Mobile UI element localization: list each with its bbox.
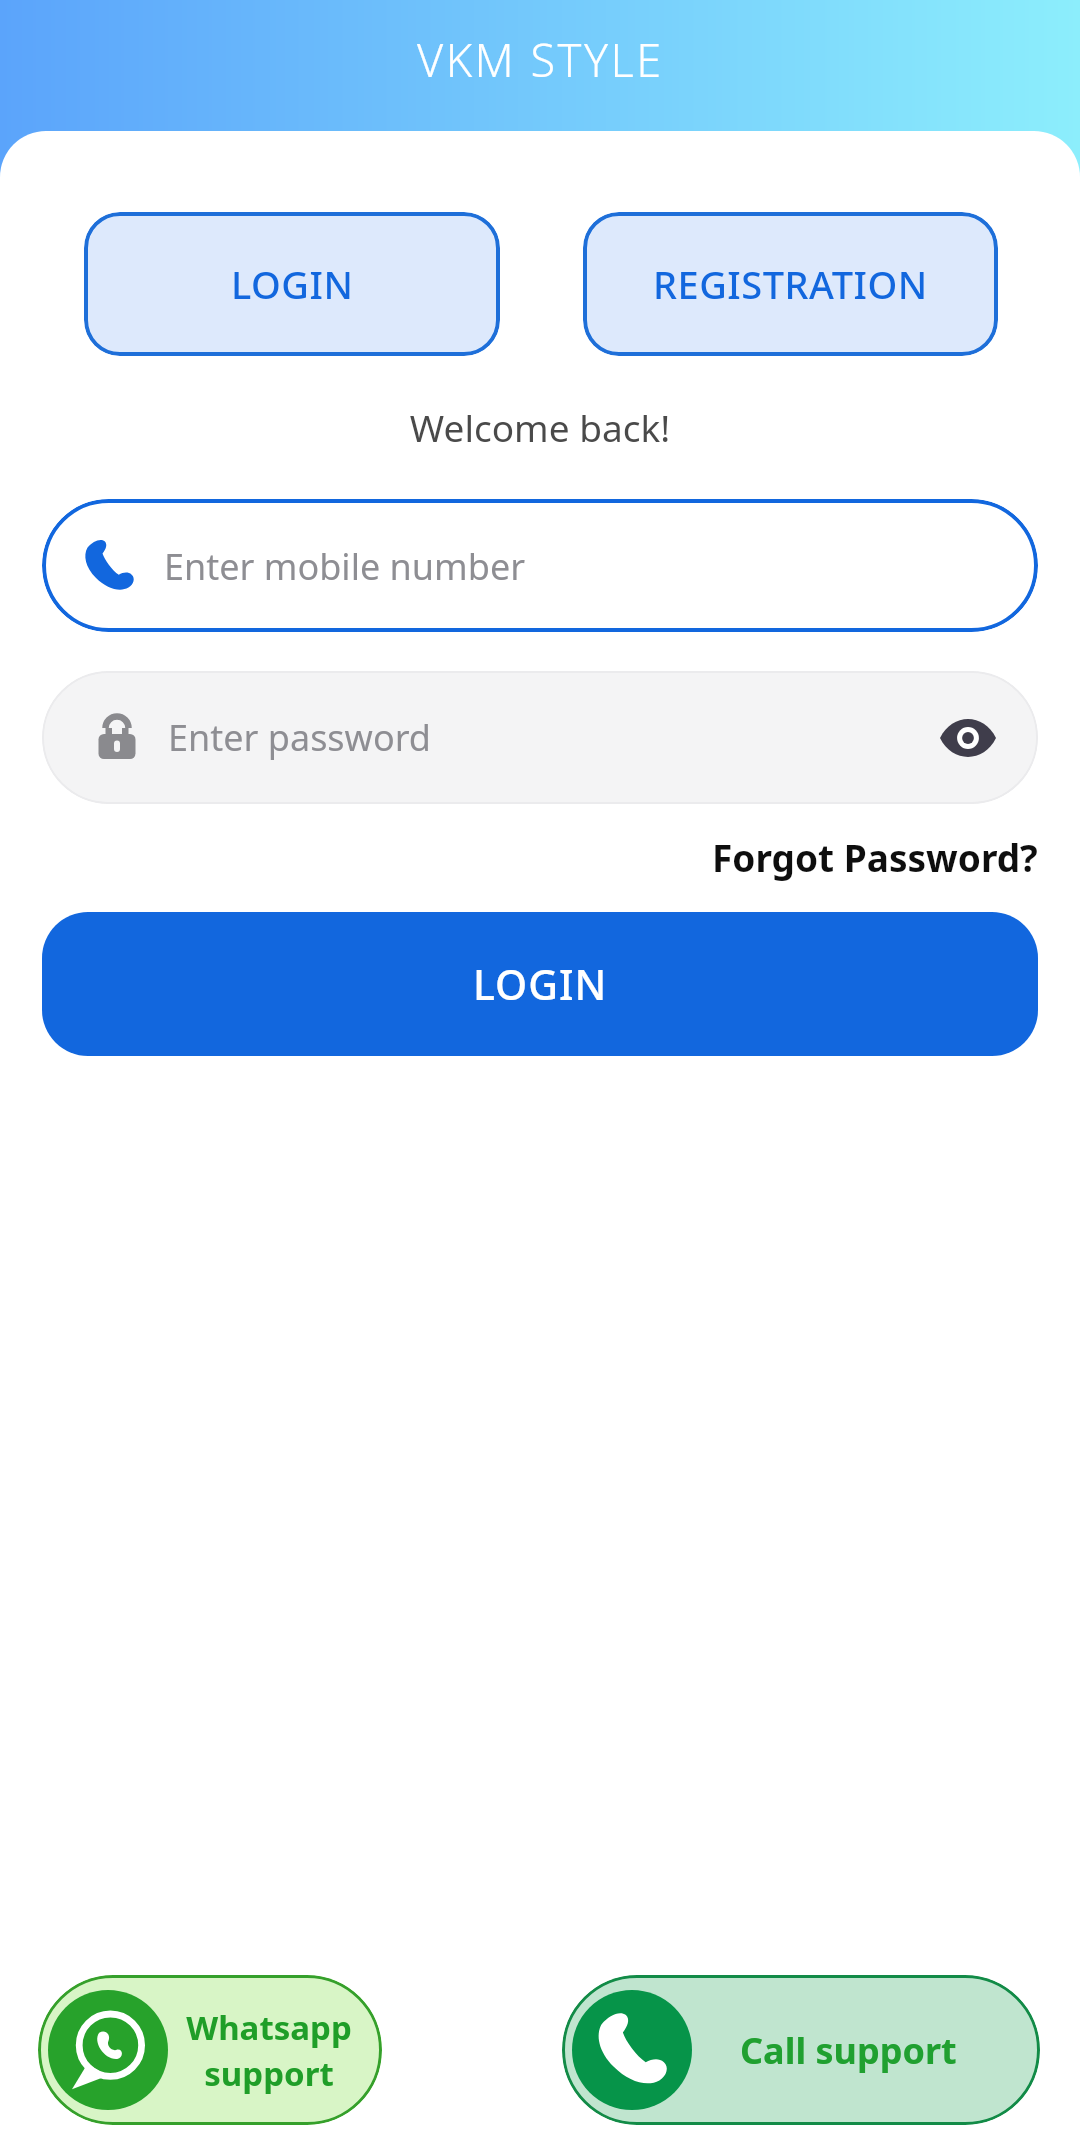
- button[interactable]: Enter password: [42, 671, 1038, 804]
- button[interactable]: Forgot Password?: [708, 828, 1042, 886]
- button[interactable]: Show password: [930, 700, 1006, 776]
- staticText: Welcome back!: [0, 402, 1080, 452]
- staticText: Whatsapp support: [186, 2005, 352, 2096]
- button[interactable]: REGISTRATION: [583, 212, 998, 356]
- button[interactable]: Call support: [562, 1975, 1040, 2125]
- button[interactable]: Whatsapp support: [38, 1975, 382, 2125]
- staticText: VKM STYLE: [417, 29, 664, 90]
- staticText: Forgot Password?: [712, 832, 1038, 882]
- staticText: LOGIN: [473, 956, 608, 1012]
- staticText: REGISTRATION: [653, 258, 928, 310]
- button[interactable]: LOGIN: [84, 212, 500, 356]
- staticText: Enter password: [168, 713, 431, 762]
- staticText: Call support: [740, 2026, 957, 2075]
- button[interactable]: LOGIN: [42, 912, 1038, 1056]
- staticText: LOGIN: [231, 258, 354, 310]
- staticText: Enter mobile number: [164, 542, 526, 591]
- button[interactable]: Enter mobile number: [42, 499, 1038, 632]
